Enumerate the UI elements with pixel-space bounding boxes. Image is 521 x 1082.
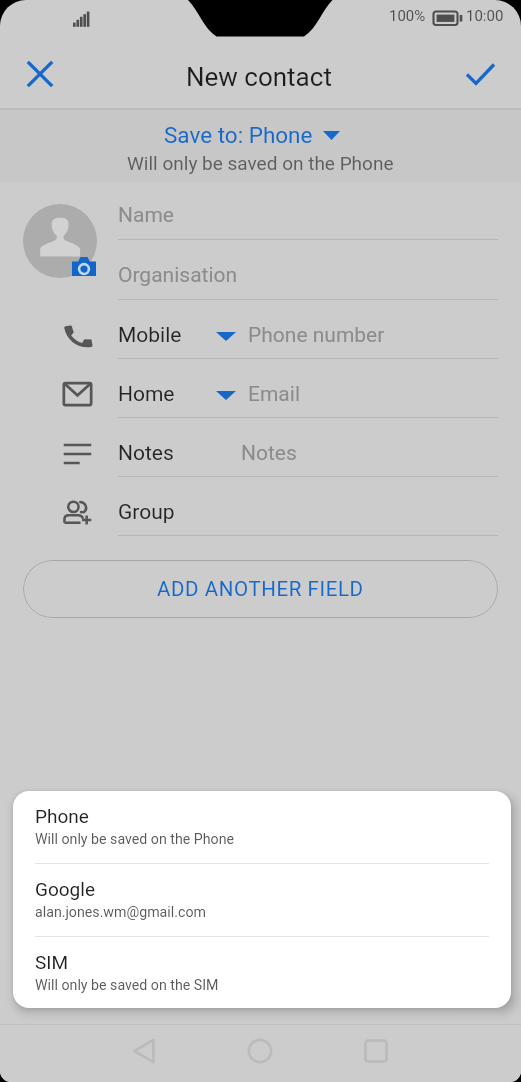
staticText: Mobile — [118, 323, 182, 348]
staticText: Will only be saved on the Phone — [127, 152, 394, 174]
button[interactable]: Save to: Phone — [164, 122, 340, 148]
button[interactable]: Home — [238, 1029, 282, 1073]
staticText: SIM — [35, 951, 69, 973]
staticText: Email — [248, 382, 300, 407]
staticText: Phone number — [248, 323, 385, 348]
staticText: Will only be saved on the SIM — [35, 977, 219, 994]
button[interactable]: Phone — [13, 791, 511, 864]
staticText: ADD ANOTHER FIELD — [157, 577, 364, 601]
staticText: 100% — [389, 7, 426, 25]
button[interactable]: Recent apps — [354, 1029, 398, 1073]
staticText: Organisation — [118, 263, 238, 288]
button[interactable]: Notes — [0, 418, 521, 477]
button[interactable]: Save — [452, 46, 508, 102]
staticText: Group — [118, 500, 175, 525]
staticText: Name — [118, 203, 174, 228]
staticText: Home — [118, 382, 175, 407]
staticText: Will only be saved on the Phone — [35, 831, 234, 848]
button[interactable]: Back — [122, 1029, 166, 1073]
button[interactable]: Mobile — [0, 300, 521, 359]
button[interactable]: Name — [118, 180, 498, 240]
button[interactable]: Home — [0, 359, 521, 418]
button[interactable]: Organisation — [118, 240, 498, 300]
button[interactable]: Discard — [12, 46, 68, 102]
staticText: New contact — [186, 62, 332, 92]
button[interactable]: SIM — [13, 937, 511, 1008]
button[interactable]: ADD ANOTHER FIELD — [23, 560, 498, 618]
staticText: 10:00 — [466, 7, 504, 25]
staticText: Notes — [241, 441, 297, 466]
staticText: alan.jones.wm@gmail.com — [35, 904, 206, 921]
button[interactable]: Add photo — [23, 204, 97, 278]
staticText: Phone — [35, 805, 89, 827]
staticText: Google — [35, 878, 95, 900]
staticText: Notes — [118, 441, 174, 466]
button[interactable]: Group — [0, 477, 521, 536]
button[interactable]: Google — [13, 864, 511, 937]
staticText: Save to: Phone — [164, 122, 313, 148]
